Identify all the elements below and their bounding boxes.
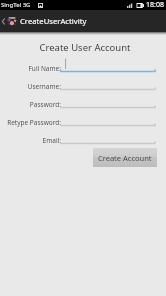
staticText: Email: <box>0 136 61 145</box>
staticText: Password: <box>0 100 61 109</box>
staticText: Create Account <box>98 153 152 163</box>
staticText: SingTel 3G <box>1 1 31 9</box>
staticText: Retype Password: <box>0 118 61 127</box>
staticText: Create User Account <box>2 41 166 54</box>
button[interactable]: Navigate up <box>0 10 20 32</box>
button[interactable]: Create Account <box>93 148 157 167</box>
staticText: Full Name: <box>0 64 61 73</box>
staticText: CreateUserActivity <box>20 16 87 26</box>
staticText: Username: <box>0 82 61 91</box>
staticText: 18:08 <box>146 0 164 10</box>
